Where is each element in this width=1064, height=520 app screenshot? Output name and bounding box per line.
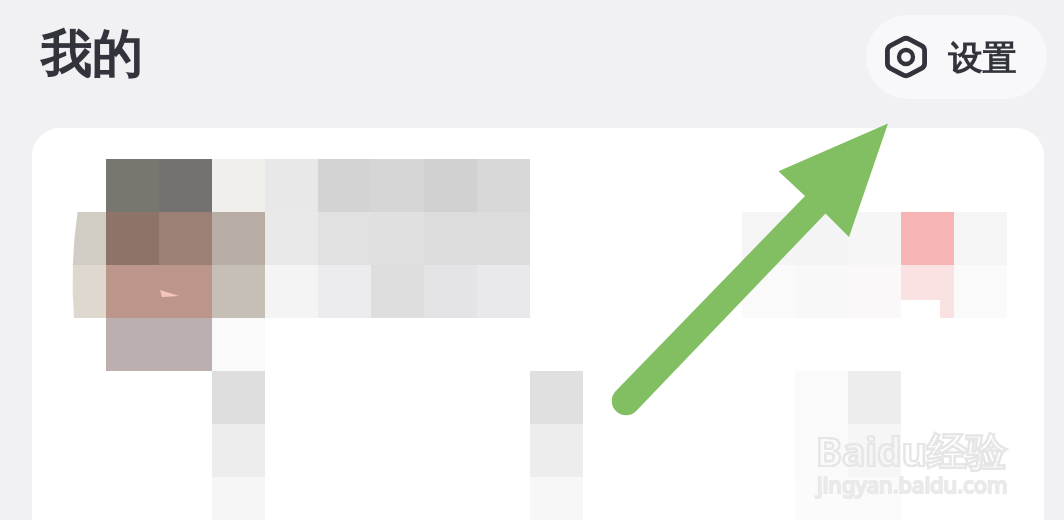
staticText: 设置 <box>948 37 1016 80</box>
other: Settings <box>885 35 927 79</box>
staticText: jingyan.baidu.com <box>817 469 1008 499</box>
staticText: Baidu经验 <box>816 424 1005 477</box>
button[interactable]: Baidu经验 <box>32 128 1044 520</box>
staticText: 我的 <box>40 23 142 87</box>
button[interactable]: Settings <box>866 15 1047 99</box>
